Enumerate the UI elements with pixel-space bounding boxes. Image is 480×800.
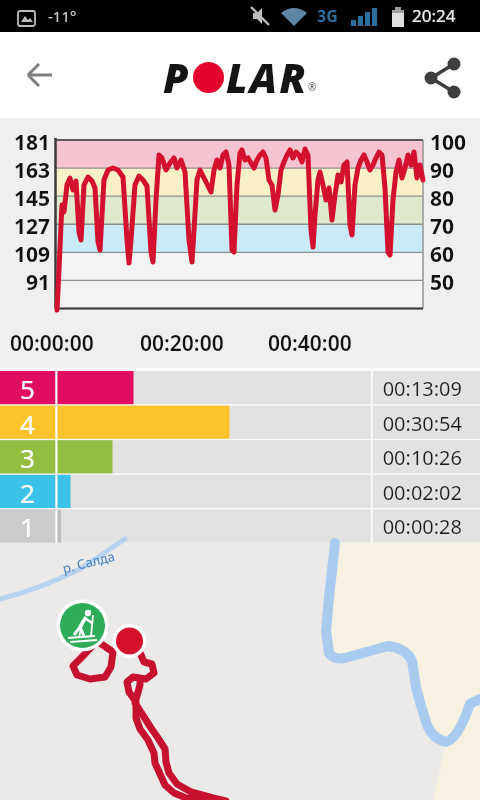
staticText: 127 <box>0 212 50 241</box>
staticText: 00:00:00 <box>10 329 94 358</box>
staticText: 00:30:54 <box>340 410 462 437</box>
staticText: 70 <box>430 212 455 241</box>
staticText: 2 <box>20 475 35 508</box>
staticText: LAR <box>226 49 308 105</box>
staticText: 00:02:02 <box>340 479 462 506</box>
staticText: 91 <box>0 268 50 297</box>
staticText: 100 <box>430 128 467 157</box>
staticText: ® <box>308 80 317 94</box>
staticText: 5 <box>20 371 35 404</box>
staticText: 109 <box>0 240 50 269</box>
staticText: 00:20:00 <box>140 329 224 358</box>
staticText: 1 <box>20 509 35 542</box>
button[interactable]: 2 <box>0 475 55 508</box>
button[interactable]: 1 <box>0 509 55 542</box>
staticText: 145 <box>0 184 50 213</box>
button[interactable] <box>418 52 466 96</box>
staticText: р. Салда <box>61 547 117 577</box>
staticText: 4 <box>20 406 35 439</box>
staticText: 20:24 <box>412 4 456 27</box>
button[interactable]: р. Салда <box>0 543 480 800</box>
button[interactable]: 4 <box>0 406 55 439</box>
button[interactable] <box>16 63 60 93</box>
staticText: 50 <box>430 268 455 297</box>
staticText: 00:40:00 <box>268 329 352 358</box>
staticText: P <box>163 49 191 105</box>
staticText: 80 <box>430 184 455 213</box>
staticText: 3G <box>317 5 338 27</box>
staticText: 00:10:26 <box>340 444 462 471</box>
button[interactable]: 5 <box>0 371 55 404</box>
staticText: 163 <box>0 156 50 185</box>
staticText: 60 <box>430 240 455 269</box>
staticText: 00:00:28 <box>340 513 462 540</box>
staticText: 181 <box>0 128 50 157</box>
staticText: 3 <box>20 440 35 473</box>
staticText: -11° <box>48 6 77 26</box>
staticText: 00:13:09 <box>340 375 462 402</box>
button[interactable]: 3 <box>0 440 55 473</box>
staticText: 90 <box>430 156 455 185</box>
